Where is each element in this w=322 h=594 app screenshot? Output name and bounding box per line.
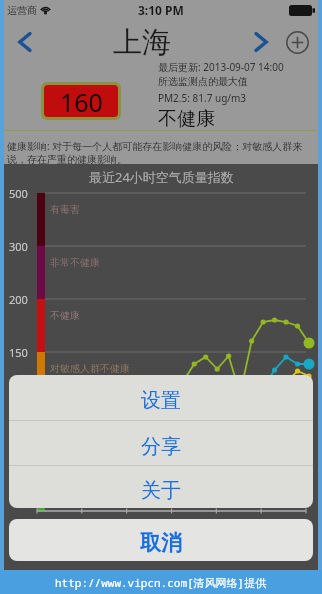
button[interactable]: Add city xyxy=(278,23,316,61)
staticText: 设置 xyxy=(141,388,181,413)
staticText: 健康影响: 对于每一个人都可能存在影响健康的风险；对敏感人群来 xyxy=(7,139,303,153)
staticText: 500 xyxy=(9,186,28,201)
staticText: 有毒害 xyxy=(50,203,80,216)
staticText: http://www.vipcn.com[清风网络]提供 xyxy=(55,575,267,590)
staticText: 3:10 PM xyxy=(138,2,184,18)
staticText: 运营商 xyxy=(7,4,37,17)
button[interactable]: Back xyxy=(4,22,44,62)
staticText: 关于 xyxy=(141,478,181,503)
staticText: 分享 xyxy=(141,434,181,459)
button[interactable]: 关于 xyxy=(9,466,313,508)
button[interactable]: 取消 xyxy=(9,519,313,561)
staticText: 300 xyxy=(9,239,28,254)
staticText: 所选监测点的最大值 xyxy=(158,75,248,88)
button[interactable]: 分享 xyxy=(9,421,313,465)
staticText: 200 xyxy=(9,292,28,307)
staticText: 上海 xyxy=(113,24,171,61)
button[interactable]: 设置 xyxy=(9,375,313,420)
staticText: 不健康 xyxy=(158,107,215,131)
staticText: 说，存在严重的健康影响。 xyxy=(7,153,127,164)
staticText: 150 xyxy=(9,345,28,360)
staticText: 最后更新: 2013-09-07 14:00 xyxy=(158,60,284,74)
staticText: PM2.5: 81.7 ug/m3 xyxy=(158,91,247,105)
button[interactable]: Next city xyxy=(244,25,278,59)
staticText: 160 xyxy=(60,85,103,117)
staticText: 非常不健康 xyxy=(50,256,100,269)
staticText: 取消 xyxy=(140,530,182,556)
staticText: 最近24小时空气质量指数 xyxy=(89,168,234,186)
staticText: 不健康 xyxy=(50,309,80,322)
staticText: 对敏感人群不健康 xyxy=(50,362,130,375)
